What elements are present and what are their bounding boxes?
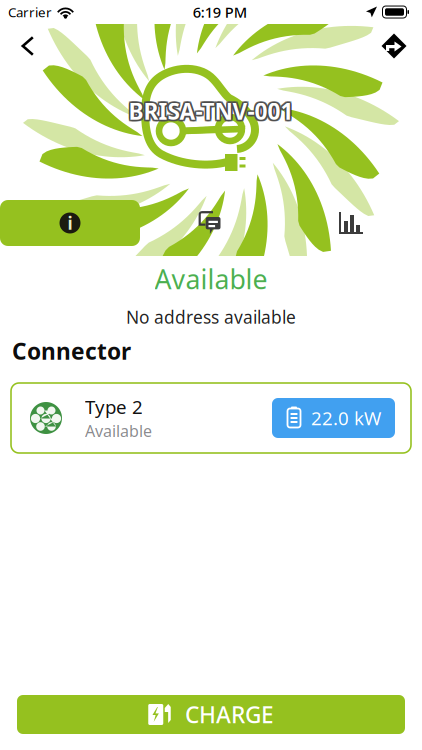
staticText: BRISA-TNV-001 bbox=[128, 94, 293, 125]
staticText: BRISA-TNV-001 bbox=[127, 94, 292, 125]
button[interactable]: Directions bbox=[372, 26, 416, 66]
staticText: 22.0 kW bbox=[311, 406, 381, 430]
staticText: i bbox=[67, 211, 72, 234]
button[interactable]: CHARGE bbox=[17, 695, 405, 734]
staticText: Available bbox=[154, 261, 267, 297]
staticText: BRISA-TNV-001 bbox=[130, 94, 295, 125]
button[interactable]: Back bbox=[6, 26, 50, 66]
button[interactable]: Information bbox=[0, 200, 140, 246]
staticText: BRISA-TNV-001 bbox=[127, 97, 292, 127]
button[interactable]: Statistics bbox=[280, 200, 422, 246]
button[interactable]: Messages bbox=[140, 200, 280, 246]
staticText: 6:19 PM bbox=[193, 2, 247, 22]
staticText: Connector bbox=[12, 336, 131, 366]
staticText: BRISA-TNV-001 bbox=[128, 96, 293, 126]
staticText: CHARGE bbox=[185, 699, 274, 729]
staticText: No address available bbox=[126, 305, 296, 328]
staticText: Available bbox=[85, 420, 152, 441]
staticText: BRISA-TNV-001 bbox=[130, 97, 295, 127]
staticText: BRISA-TNV-001 bbox=[128, 97, 293, 127]
staticText: BRISA-TNV-001 bbox=[130, 96, 295, 126]
staticText: BRISA-TNV-001 bbox=[127, 96, 292, 126]
staticText: Carrier bbox=[8, 3, 52, 21]
staticText: Type 2 bbox=[85, 394, 143, 419]
